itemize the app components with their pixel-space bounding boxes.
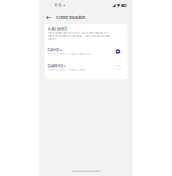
staticText: Device screen resolution will switch aut… bbox=[47, 31, 109, 41]
staticText: Auto select bbox=[47, 27, 66, 31]
staticText: 2340 x 1080, Longer battery life bbox=[47, 52, 90, 55]
staticText: Screen resolution bbox=[56, 15, 85, 20]
staticText: 3200 x 1440, Sharper image bbox=[47, 68, 85, 71]
staticText: FullHD+ bbox=[47, 47, 62, 52]
button[interactable]: Quad HD+ bbox=[44, 59, 127, 75]
staticText: Quad HD+ bbox=[47, 63, 66, 68]
staticText: 10:18 bbox=[54, 4, 61, 7]
button[interactable]: FullHD+ bbox=[44, 43, 127, 59]
button[interactable]: Back bbox=[46, 15, 51, 20]
